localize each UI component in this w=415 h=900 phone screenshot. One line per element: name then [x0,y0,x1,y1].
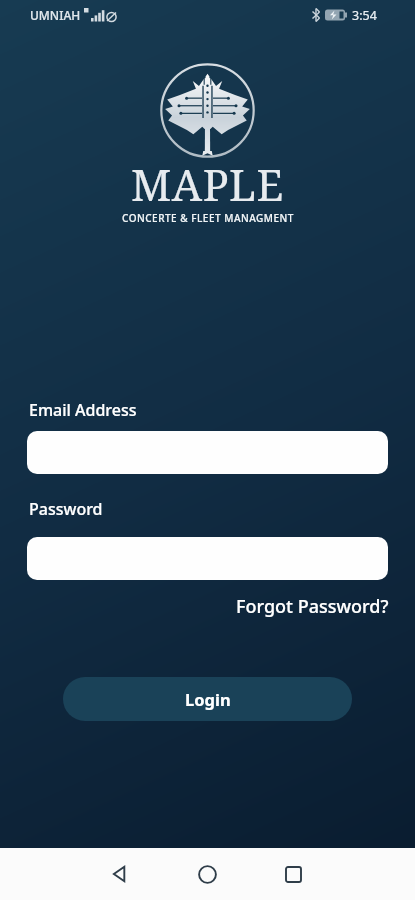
button[interactable] [27,431,388,474]
staticText: Login [185,688,231,710]
staticText: Email Address [29,399,137,421]
staticText: 3:54 [352,7,377,24]
button[interactable]: Login [63,677,352,721]
button[interactable] [111,865,129,883]
staticText: Password [29,498,103,520]
button[interactable] [27,537,388,580]
button[interactable] [285,866,302,883]
staticText: MAPLE [131,155,284,214]
staticText: CONCERTE & FLEET MANAGMENT [122,211,294,225]
button[interactable] [198,865,217,884]
button[interactable]: Forgot Password? [236,594,389,619]
staticText: UMNIAH [30,7,81,23]
